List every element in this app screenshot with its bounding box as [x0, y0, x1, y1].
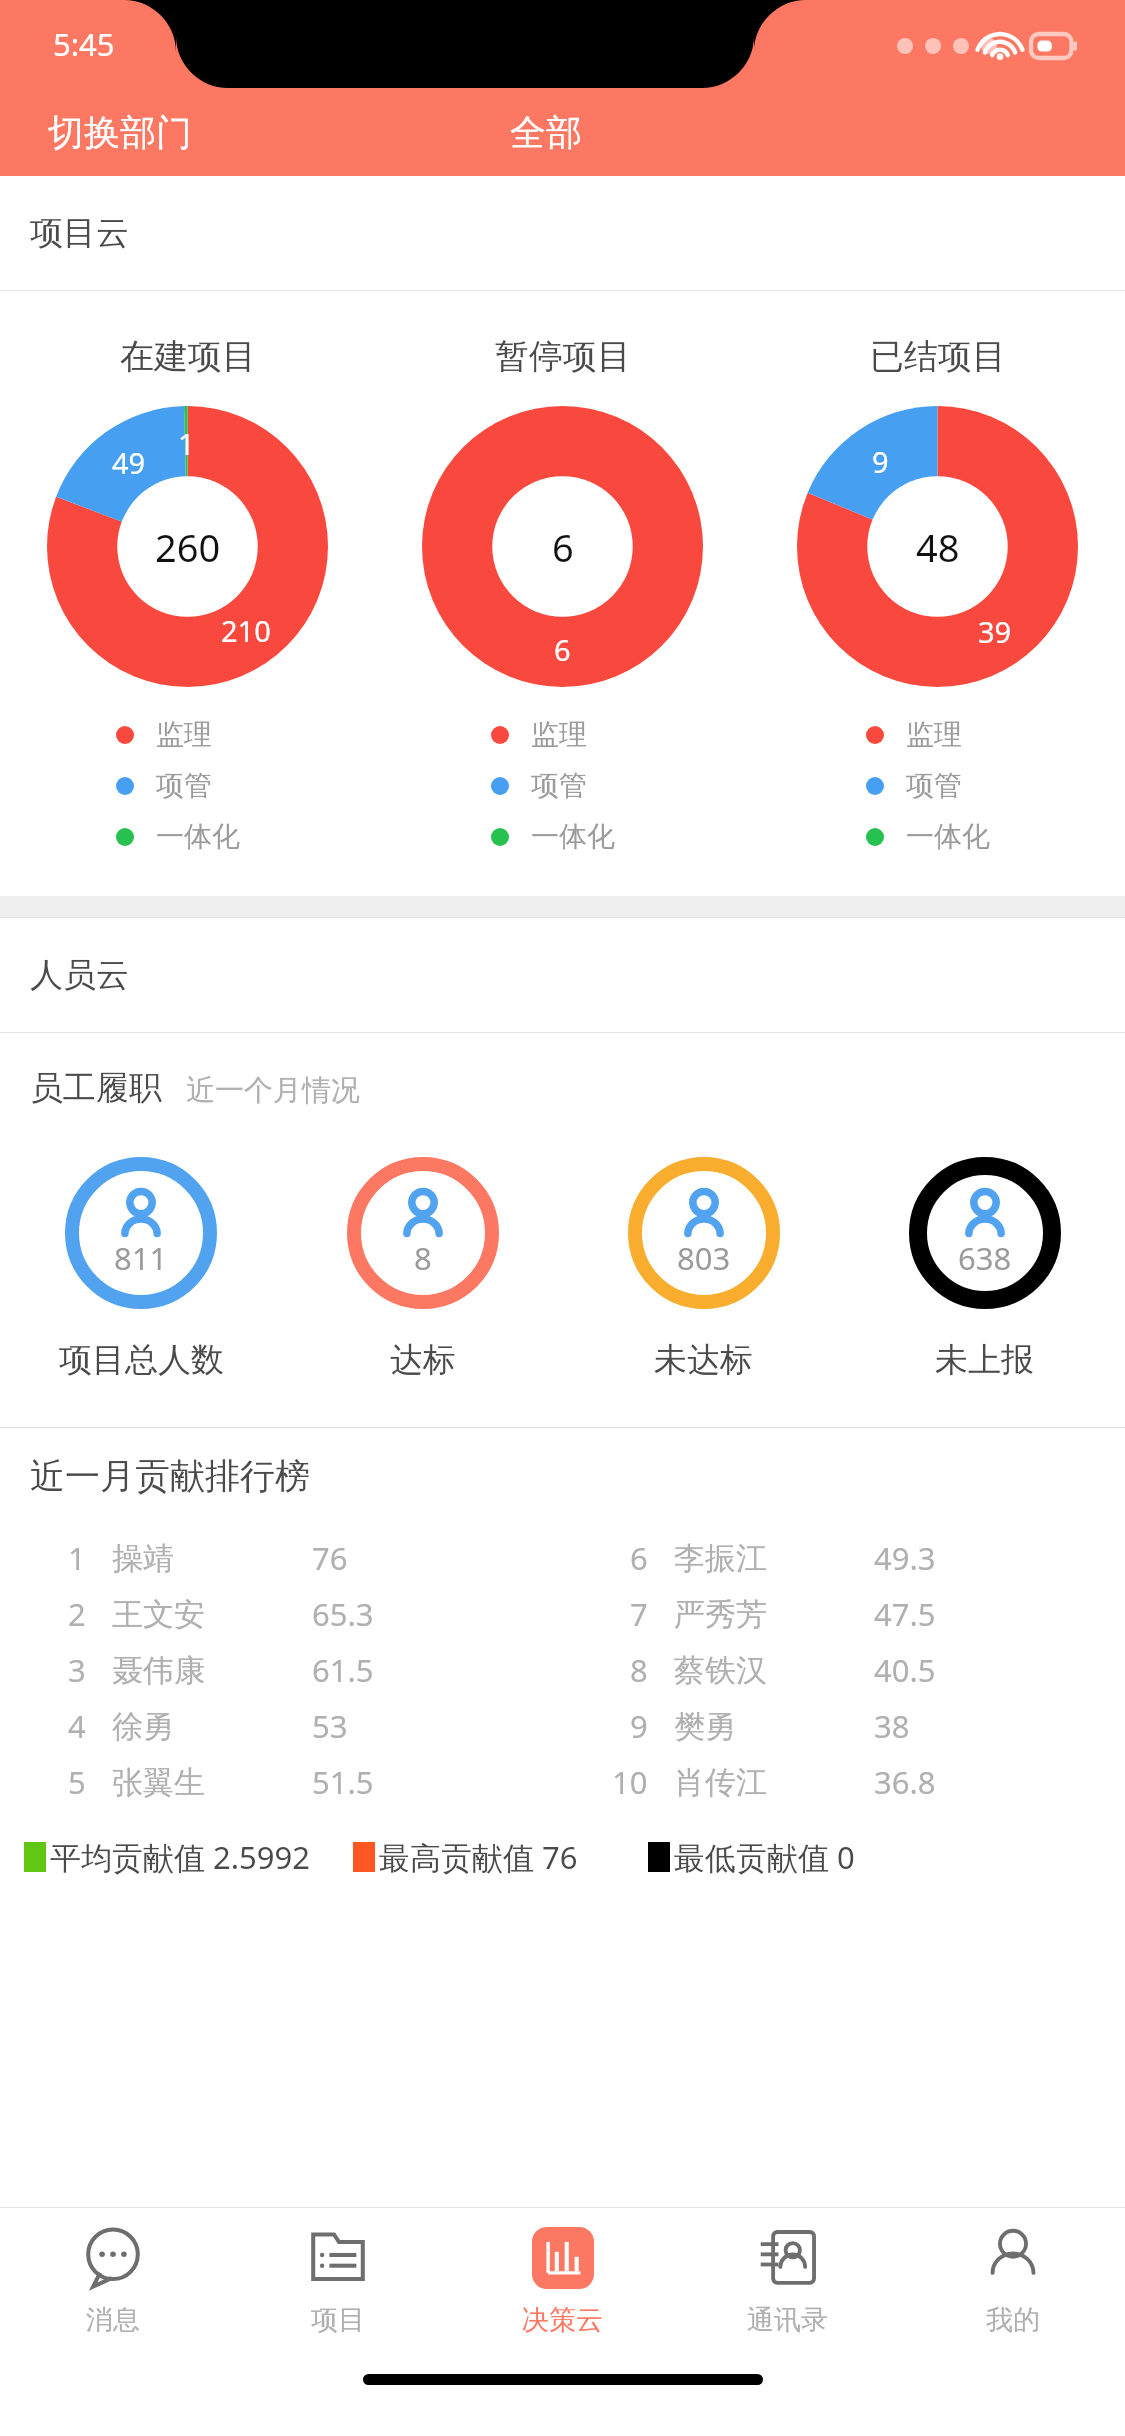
- staticText: 蔡铁汉: [674, 1651, 767, 1690]
- staticText: 人员云: [30, 954, 129, 996]
- staticText: 近一月贡献排行榜: [30, 1454, 310, 1498]
- staticText: 聂伟康: [112, 1651, 205, 1690]
- button[interactable]: 4: [0, 1698, 562, 1754]
- staticText: 48: [916, 521, 960, 573]
- staticText: 未上报: [935, 1339, 1034, 1381]
- button[interactable]: 6: [562, 1530, 1125, 1586]
- button[interactable]: 项目云: [0, 176, 1125, 290]
- staticText: 全部: [510, 110, 582, 155]
- staticText: 平均贡献值 2.5992: [50, 1836, 311, 1878]
- staticText: 决策云: [522, 2303, 603, 2337]
- button[interactable]: 已结项目: [750, 335, 1125, 862]
- staticText: 51.5: [312, 1761, 374, 1803]
- staticText: 638: [958, 1237, 1012, 1279]
- button[interactable]: 决策云: [450, 2208, 675, 2356]
- staticText: 项管: [906, 768, 962, 803]
- staticText: 一体化: [531, 819, 615, 854]
- staticText: 严秀芳: [674, 1595, 767, 1634]
- staticText: 肖传江: [674, 1763, 767, 1802]
- staticText: 36.8: [874, 1761, 936, 1803]
- button[interactable]: 1: [0, 1530, 562, 1586]
- staticText: 1: [68, 1537, 86, 1579]
- staticText: 徐勇: [112, 1707, 174, 1746]
- staticText: 5:45: [53, 23, 115, 65]
- staticText: 已结项目: [870, 335, 1006, 378]
- button[interactable]: 8: [562, 1642, 1125, 1698]
- staticText: 10: [612, 1761, 648, 1803]
- button[interactable]: 在建项目: [0, 335, 375, 862]
- staticText: 47.5: [874, 1593, 936, 1635]
- button[interactable]: 8: [282, 1157, 563, 1381]
- button[interactable]: 我的: [900, 2208, 1125, 2356]
- staticText: 4: [68, 1705, 86, 1747]
- button[interactable]: 人员云: [0, 918, 1125, 1032]
- button[interactable]: 9: [562, 1698, 1125, 1754]
- staticText: 1: [178, 424, 195, 463]
- staticText: 6: [630, 1537, 648, 1579]
- staticText: 我的: [986, 2303, 1040, 2337]
- button[interactable]: 2: [0, 1586, 562, 1642]
- other: 项目: [307, 2227, 369, 2289]
- staticText: 803: [677, 1237, 731, 1279]
- staticText: 38: [874, 1705, 910, 1747]
- button[interactable]: 638: [844, 1157, 1125, 1381]
- other: 通讯录: [757, 2227, 819, 2289]
- staticText: 6: [554, 630, 571, 669]
- staticText: 9: [630, 1705, 648, 1747]
- staticText: 近一个月情况: [186, 1072, 360, 1109]
- staticText: 7: [630, 1593, 648, 1635]
- staticText: 2: [68, 1593, 86, 1635]
- button[interactable]: 7: [562, 1586, 1125, 1642]
- button[interactable]: 切换部门: [0, 100, 216, 165]
- staticText: 员工履职: [30, 1067, 162, 1109]
- button[interactable]: 3: [0, 1642, 562, 1698]
- staticText: 樊勇: [674, 1707, 736, 1746]
- staticText: 39: [978, 612, 1012, 651]
- staticText: 8: [414, 1237, 432, 1279]
- other: 决策云: [532, 2227, 594, 2289]
- staticText: 61.5: [312, 1649, 374, 1691]
- staticText: 操靖: [112, 1539, 174, 1578]
- staticText: 8: [630, 1649, 648, 1691]
- staticText: 811: [114, 1237, 168, 1279]
- staticText: 项目总人数: [59, 1339, 224, 1381]
- staticText: 项管: [156, 768, 212, 803]
- staticText: 65.3: [312, 1593, 374, 1635]
- staticText: 达标: [390, 1339, 456, 1381]
- staticText: 项目: [311, 2303, 365, 2337]
- staticText: 49.3: [874, 1537, 936, 1579]
- staticText: 暂停项目: [495, 335, 631, 378]
- staticText: 76: [312, 1537, 348, 1579]
- other: 我的: [982, 2227, 1044, 2289]
- button[interactable]: 消息: [0, 2208, 225, 2356]
- staticText: 在建项目: [120, 335, 256, 378]
- button[interactable]: 10: [562, 1754, 1125, 1810]
- button[interactable]: 全部: [500, 100, 592, 165]
- staticText: 未达标: [654, 1339, 753, 1381]
- staticText: 一体化: [156, 819, 240, 854]
- staticText: 项管: [531, 768, 587, 803]
- staticText: 260: [155, 521, 221, 573]
- staticText: 监理: [156, 717, 212, 752]
- staticText: 王文安: [112, 1595, 205, 1634]
- button[interactable]: 811: [0, 1157, 282, 1381]
- button[interactable]: 暂停项目: [375, 335, 750, 862]
- staticText: 消息: [86, 2303, 140, 2337]
- button[interactable]: 项目: [225, 2208, 450, 2356]
- button[interactable]: 通讯录: [675, 2208, 900, 2356]
- button[interactable]: 5: [0, 1754, 562, 1810]
- staticText: 3: [68, 1649, 86, 1691]
- staticText: 监理: [531, 717, 587, 752]
- staticText: 6: [552, 521, 574, 573]
- staticText: 9: [872, 442, 889, 481]
- staticText: 监理: [906, 717, 962, 752]
- staticText: 最低贡献值 0: [674, 1836, 855, 1878]
- button[interactable]: 803: [563, 1157, 844, 1381]
- staticText: 一体化: [906, 819, 990, 854]
- other: 消息: [82, 2227, 144, 2289]
- staticText: 最高贡献值 76: [379, 1836, 578, 1878]
- staticText: 49: [112, 443, 146, 482]
- staticText: 210: [221, 611, 271, 650]
- staticText: 张翼生: [112, 1763, 205, 1802]
- staticText: 切换部门: [48, 110, 192, 155]
